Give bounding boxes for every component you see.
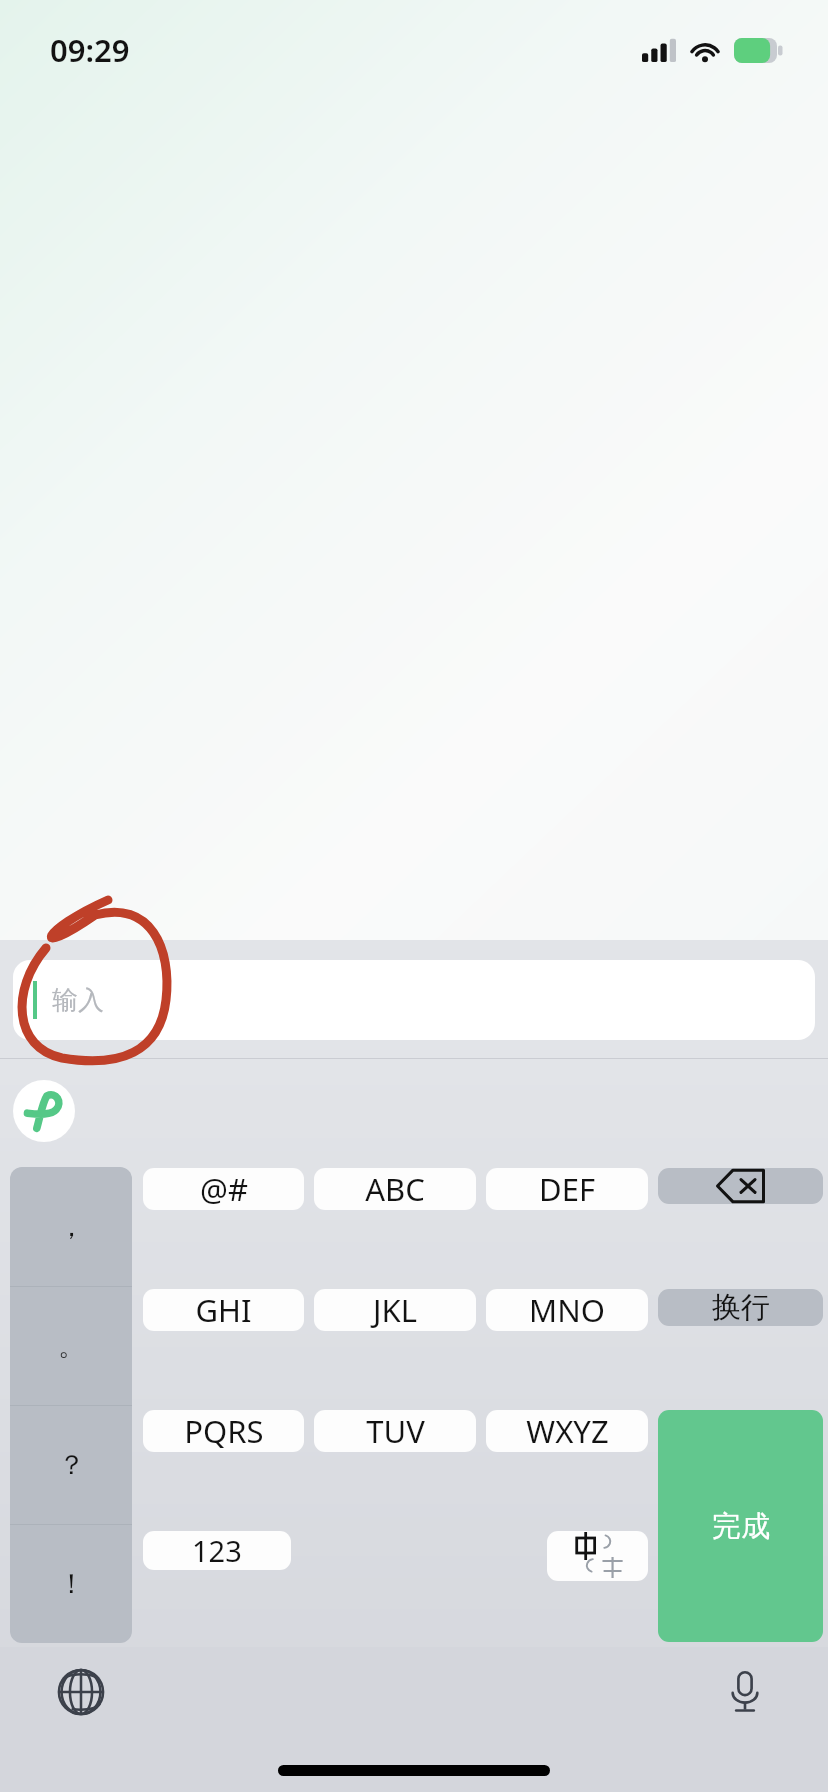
staticText: 123 bbox=[192, 1531, 242, 1570]
staticText: 输入 bbox=[52, 984, 104, 1017]
button[interactable]: 。 bbox=[10, 1287, 132, 1405]
button[interactable]: Delete bbox=[658, 1168, 823, 1204]
button[interactable]: 123 bbox=[143, 1531, 291, 1570]
staticText: ？ bbox=[58, 1448, 85, 1482]
button[interactable]: MNO bbox=[486, 1289, 648, 1331]
button[interactable]: PQRS bbox=[143, 1410, 304, 1452]
button[interactable]: ， bbox=[10, 1167, 132, 1286]
button[interactable]: 换行 bbox=[658, 1289, 823, 1326]
staticText: ABC bbox=[365, 1168, 425, 1210]
staticText: 。 bbox=[58, 1329, 85, 1363]
button[interactable]: 输入 bbox=[13, 960, 815, 1040]
button[interactable]: TUV bbox=[314, 1410, 476, 1452]
staticText: WXYZ bbox=[526, 1410, 609, 1452]
button[interactable]: @# bbox=[143, 1168, 304, 1210]
button[interactable]: 完成 bbox=[658, 1410, 823, 1642]
staticText: ！ bbox=[58, 1567, 85, 1601]
staticText: DEF bbox=[539, 1168, 595, 1210]
button[interactable]: JKL bbox=[314, 1289, 476, 1331]
staticText: JKL bbox=[373, 1289, 417, 1331]
button[interactable]: ABC bbox=[314, 1168, 476, 1210]
staticText: TUV bbox=[366, 1410, 425, 1452]
staticText: MNO bbox=[529, 1289, 605, 1331]
button[interactable]: Input method logo bbox=[13, 1080, 75, 1142]
button[interactable]: WXYZ bbox=[486, 1410, 648, 1452]
button[interactable]: ？ bbox=[10, 1406, 132, 1524]
staticText: 换行 bbox=[712, 1289, 770, 1326]
staticText: 完成 bbox=[712, 1508, 770, 1545]
staticText: PQRS bbox=[184, 1410, 264, 1452]
button[interactable]: ！ bbox=[10, 1525, 132, 1643]
staticText: @# bbox=[200, 1168, 248, 1210]
button[interactable]: Switch keyboard language bbox=[50, 1661, 112, 1723]
staticText: GHI bbox=[195, 1289, 252, 1331]
button[interactable]: GHI bbox=[143, 1289, 304, 1331]
button[interactable]: DEF bbox=[486, 1168, 648, 1210]
button[interactable]: Chinese English toggle bbox=[547, 1531, 648, 1581]
button[interactable]: Voice input bbox=[714, 1661, 776, 1723]
staticText: 09:29 bbox=[50, 29, 130, 71]
staticText: ， bbox=[58, 1210, 85, 1244]
